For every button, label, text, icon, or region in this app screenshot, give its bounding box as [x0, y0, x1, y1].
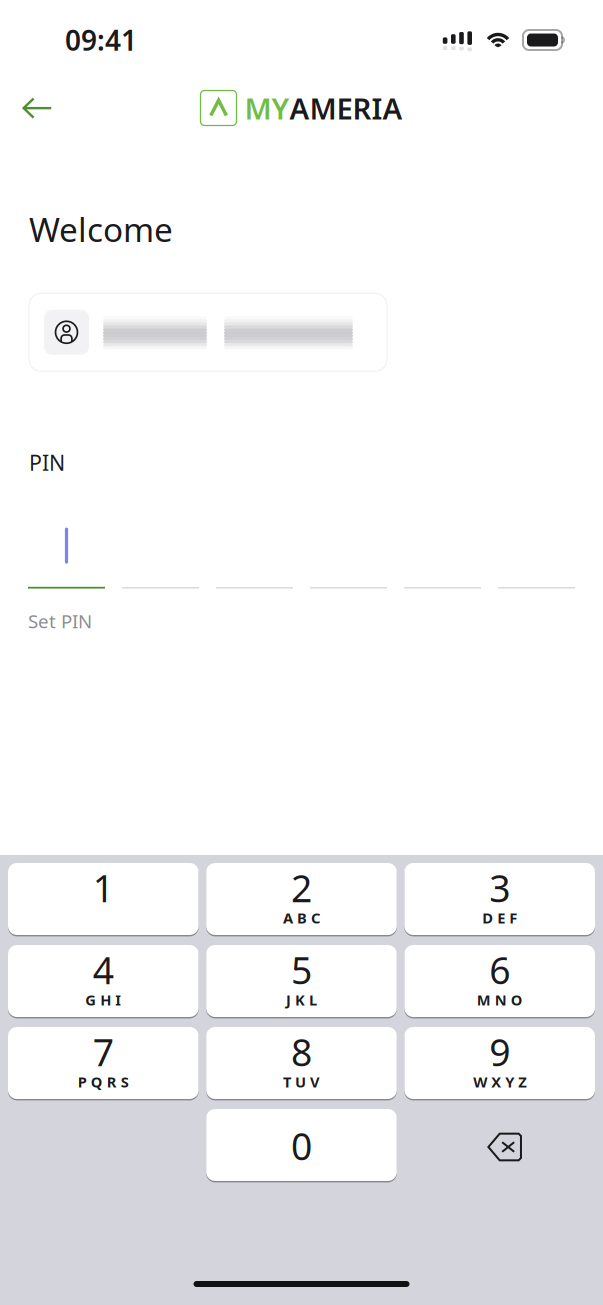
button[interactable]: Delete: [404, 1109, 595, 1181]
button[interactable]: 8: [206, 1027, 397, 1099]
staticText: 4: [93, 945, 114, 995]
button[interactable]: 5: [206, 945, 397, 1017]
staticText: W X Y Z: [473, 1072, 526, 1091]
staticText: 8: [291, 1027, 312, 1077]
button[interactable]: 6: [404, 945, 595, 1017]
staticText: Welcome: [29, 207, 173, 251]
staticText: 2: [291, 863, 312, 913]
staticText: PIN: [29, 448, 65, 477]
button[interactable]: 4: [8, 945, 199, 1017]
staticText: J K L: [286, 990, 317, 1009]
button[interactable]: [29, 293, 387, 371]
staticText: AMERIA: [289, 88, 402, 127]
staticText: 0: [291, 1121, 312, 1171]
staticText: D E F: [482, 908, 517, 927]
staticText: 9: [489, 1027, 510, 1077]
staticText: 5: [291, 945, 312, 995]
button[interactable]: Back: [15, 87, 59, 128]
staticText: 6: [489, 945, 510, 995]
staticText: 7: [93, 1027, 114, 1077]
staticText: G H I: [85, 990, 121, 1009]
button[interactable]: 1: [8, 863, 199, 935]
button[interactable]: 3: [404, 863, 595, 935]
button[interactable]: 0: [206, 1109, 397, 1181]
staticText: P Q R S: [78, 1072, 129, 1091]
button[interactable]: 2: [206, 863, 397, 935]
staticText: Set PIN: [28, 609, 92, 633]
staticText: 1: [93, 863, 114, 913]
staticText: 3: [489, 863, 510, 913]
staticText: 09:41: [65, 21, 137, 59]
staticText: MY: [244, 88, 289, 127]
staticText: T U V: [283, 1072, 320, 1091]
button[interactable]: 9: [404, 1027, 595, 1099]
staticText: A B C: [283, 908, 320, 927]
staticText: M N O: [477, 990, 523, 1009]
button[interactable]: 7: [8, 1027, 199, 1099]
